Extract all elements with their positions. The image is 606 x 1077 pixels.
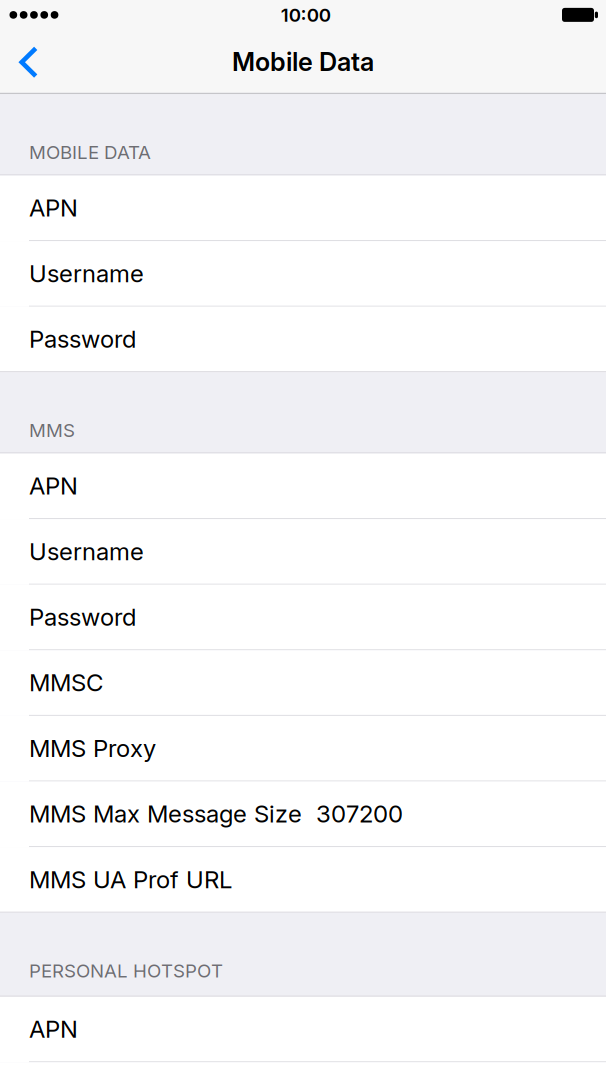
button[interactable]: APN bbox=[0, 453, 606, 519]
button[interactable]: APN bbox=[0, 997, 606, 1062]
staticText: Password bbox=[29, 324, 136, 353]
staticText: MMSC bbox=[29, 668, 103, 697]
button[interactable]: MMS Max Message Size 307200 bbox=[0, 781, 606, 847]
staticText: MOBILE DATA bbox=[29, 141, 151, 163]
button[interactable]: Username bbox=[0, 241, 606, 307]
staticText: APN bbox=[29, 1014, 78, 1043]
staticText: MMS bbox=[29, 419, 75, 441]
button[interactable]: Password bbox=[0, 585, 606, 650]
button[interactable]: MMS UA Prof URL bbox=[0, 847, 606, 913]
staticText: PERSONAL HOTSPOT bbox=[29, 959, 223, 982]
button[interactable]: MMS Proxy bbox=[0, 716, 606, 781]
button[interactable]: Username bbox=[0, 519, 606, 585]
staticText: 10:00 bbox=[281, 4, 331, 26]
staticText: MMS Proxy bbox=[29, 734, 156, 763]
button[interactable]: APN bbox=[0, 175, 606, 241]
button[interactable]: MMSC bbox=[0, 650, 606, 716]
staticText: MMS UA Prof URL bbox=[29, 865, 232, 894]
staticText: APN bbox=[29, 193, 78, 222]
button[interactable]: Password bbox=[0, 307, 606, 372]
staticText: Username bbox=[29, 259, 144, 288]
staticText: Username bbox=[29, 537, 144, 566]
staticText: APN bbox=[29, 471, 78, 500]
staticText: Mobile Data bbox=[232, 46, 374, 77]
staticText: Password bbox=[29, 602, 136, 631]
button[interactable]: Back bbox=[0, 29, 60, 92]
staticText: MMS Max Message Size 307200 bbox=[29, 799, 403, 828]
